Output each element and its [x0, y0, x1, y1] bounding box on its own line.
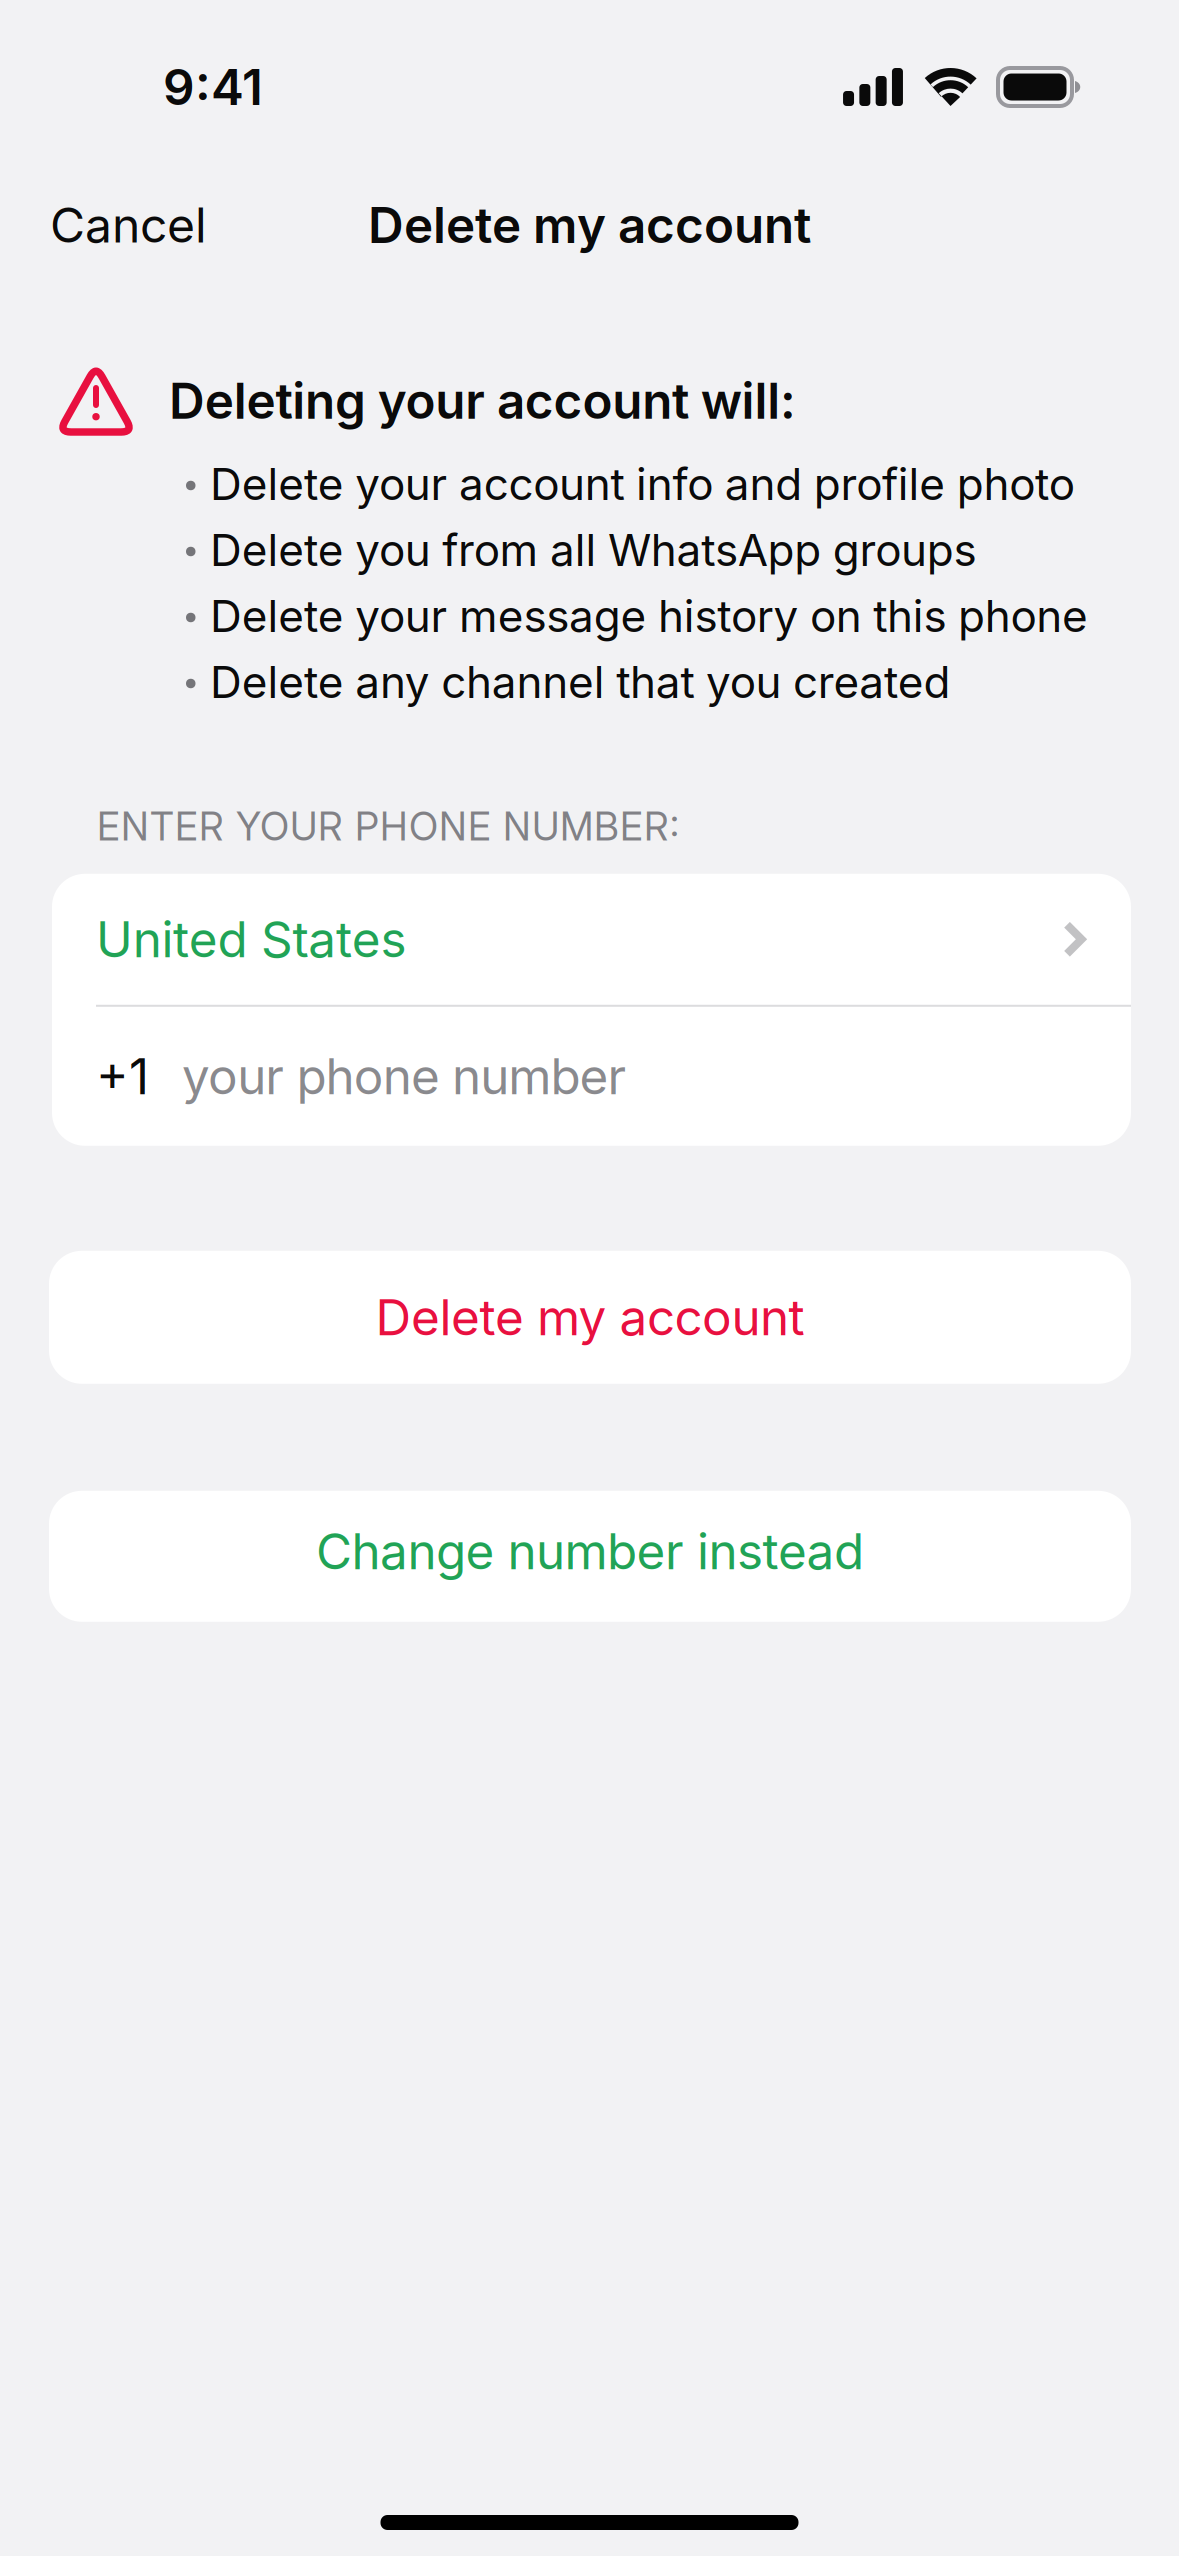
button[interactable]: Delete my account [49, 1251, 1131, 1384]
staticText: Delete my account [375, 1287, 804, 1347]
button[interactable]: Change number instead [49, 1491, 1131, 1622]
staticText: United States [96, 909, 406, 969]
staticText: Cancel [50, 196, 207, 254]
staticText: Delete your account info and profile pho… [210, 457, 1075, 511]
staticText: +1 [96, 1046, 149, 1106]
staticText: Delete you from all WhatsApp groups [210, 523, 976, 577]
button[interactable]: Cancel [0, 169, 243, 275]
staticText: your phone number [182, 1046, 627, 1106]
button[interactable]: United States [52, 874, 1131, 1005]
staticText: ENTER YOUR PHONE NUMBER: [97, 803, 679, 850]
staticText: Delete your message history on this phon… [210, 589, 1088, 643]
staticText: 9:41 [163, 57, 263, 117]
staticText: Delete my account [368, 195, 811, 255]
staticText: Delete any channel that you created [210, 655, 950, 709]
staticText: Change number instead [316, 1521, 864, 1581]
staticText: Deleting your account will: [169, 371, 796, 431]
